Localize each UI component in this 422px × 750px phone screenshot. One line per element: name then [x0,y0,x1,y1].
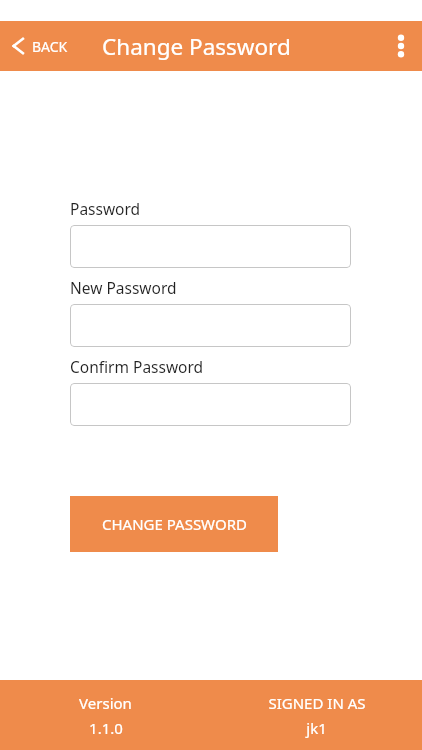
button[interactable]: SIGNED IN AS [211,693,422,738]
staticText: Version [79,693,132,713]
button[interactable] [70,225,351,268]
button[interactable]: CHANGE PASSWORD [70,496,278,552]
staticText: Password [70,198,141,219]
button[interactable] [70,383,351,426]
staticText: Confirm Password [70,356,204,377]
staticText: New Password [70,277,177,298]
button[interactable]: Version [0,693,211,738]
staticText: CHANGE PASSWORD [102,514,247,534]
staticText: 1.1.0 [89,718,123,738]
button[interactable]: More options [380,21,422,71]
button[interactable]: BACK [0,21,76,71]
staticText: jk1 [306,718,327,738]
button[interactable] [70,304,351,347]
staticText: Change Password [102,31,291,62]
staticText: BACK [32,37,68,56]
staticText: SIGNED IN AS [268,693,366,713]
